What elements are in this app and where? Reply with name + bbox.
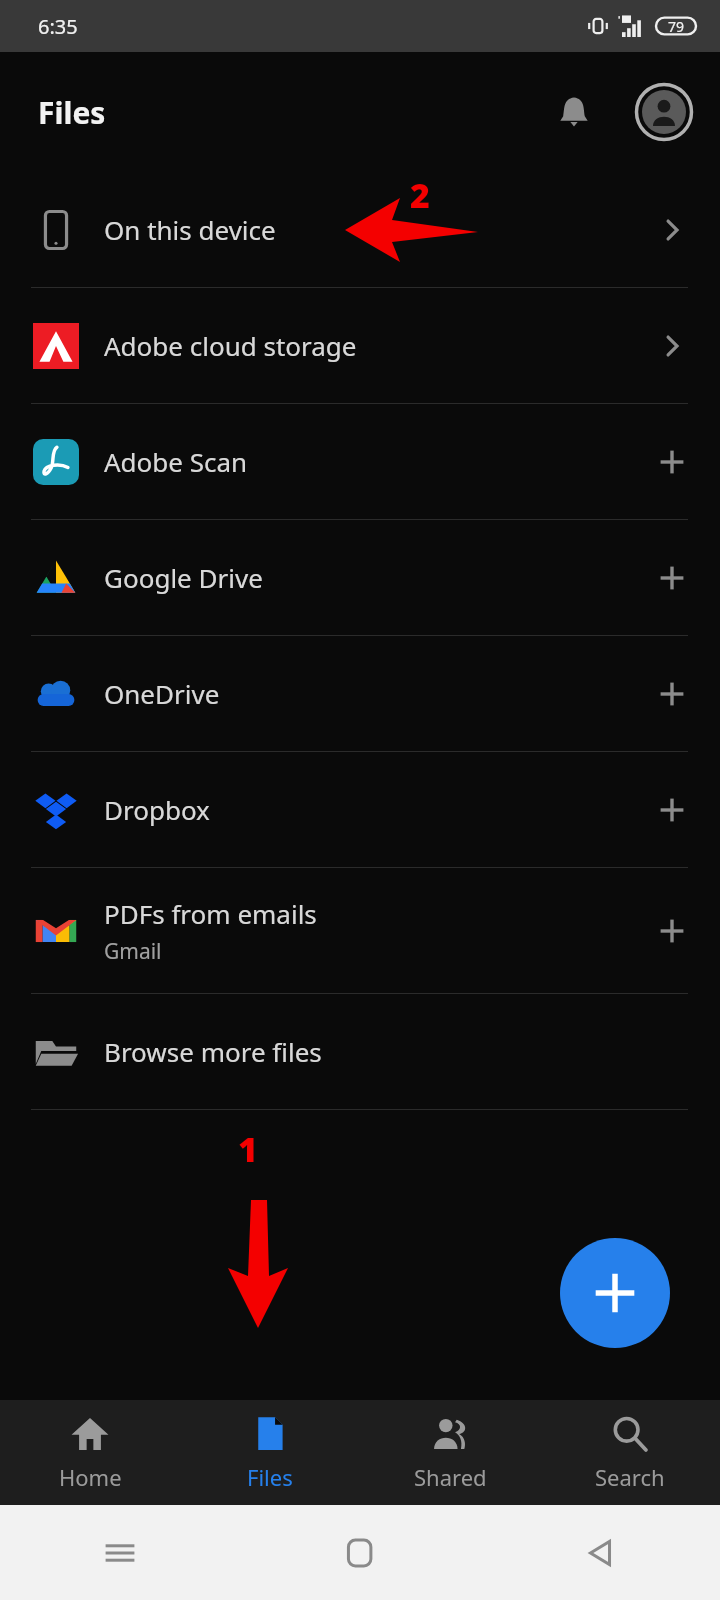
button[interactable]: Back [480,1505,720,1600]
button[interactable]: Adobe Scan [0,404,720,519]
staticText: Shared [414,1462,487,1492]
staticText: Gmail [104,937,162,966]
staticText: Dropbox [104,792,210,827]
button[interactable]: Dropbox [0,752,720,867]
staticText: Browse more files [104,1034,322,1069]
staticText: Adobe cloud storage [104,328,357,363]
button[interactable]: Account [634,82,694,142]
button[interactable]: Google Drive [0,520,720,635]
button[interactable]: Notifications [542,80,606,144]
staticText: Files [247,1462,293,1492]
staticText: 79 [668,17,685,36]
staticText: Search [595,1462,665,1492]
button[interactable]: Home [0,1400,180,1505]
button[interactable]: PDFs from emails [0,868,720,993]
staticText: 1 [238,1126,258,1172]
staticText: PDFs from emails [104,896,317,931]
staticText: Adobe Scan [104,444,248,479]
button[interactable]: OneDrive [0,636,720,751]
button[interactable]: Files [180,1400,360,1505]
staticText: Home [59,1462,122,1492]
staticText: 2 [410,172,430,218]
button[interactable]: Shared [360,1400,540,1505]
staticText: On this device [104,212,276,247]
button[interactable]: Search [540,1400,720,1505]
staticText: OneDrive [104,676,220,711]
button[interactable]: Browse more files [0,994,720,1109]
button[interactable]: Adobe cloud storage [0,288,720,403]
button[interactable]: Recent apps [0,1505,240,1600]
button[interactable]: Home [240,1505,480,1600]
staticText: Google Drive [104,560,263,595]
button[interactable]: Create [560,1238,670,1348]
staticText: Files [38,92,106,133]
button[interactable]: On this device [0,172,720,287]
staticText: 6:35 [38,13,78,40]
